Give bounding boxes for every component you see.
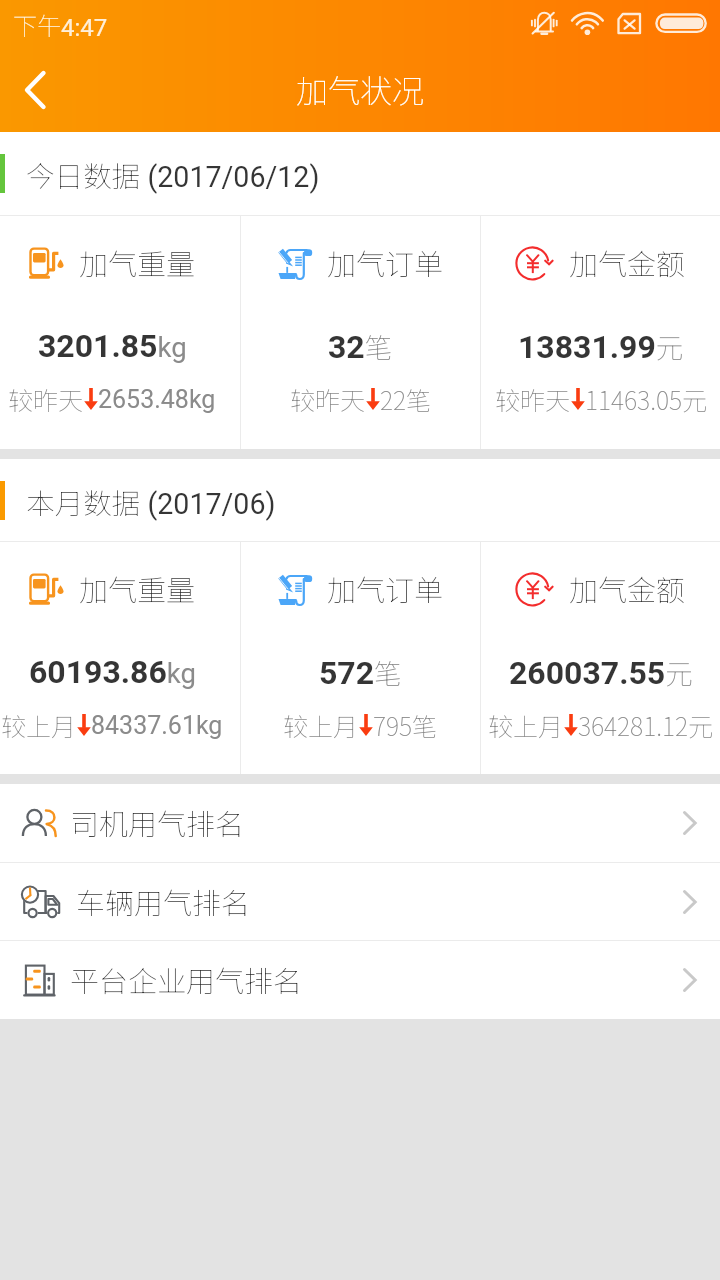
- staticText: 加气订单: [327, 567, 444, 609]
- staticText: 2653.48kg: [98, 385, 216, 414]
- staticText: 较昨天: [495, 381, 571, 417]
- staticText: 60193.86kg: [29, 653, 196, 691]
- staticText: 4:47: [61, 14, 108, 42]
- button[interactable]: 返回: [0, 50, 80, 132]
- staticText: 平台企业用气排名: [70, 958, 303, 1000]
- staticText: 较上月: [488, 707, 564, 743]
- staticText: 加气状况: [296, 66, 425, 112]
- staticText: 今日数据 (2017/06/12): [26, 154, 320, 195]
- staticText: 32笔: [328, 326, 393, 366]
- staticText: 下午: [13, 7, 61, 42]
- staticText: 车辆用气排名: [76, 880, 251, 922]
- staticText: 22笔: [380, 381, 432, 417]
- staticText: 3201.85kg: [38, 327, 187, 365]
- button[interactable]: 平台企业用气排名: [0, 941, 720, 1019]
- staticText: 364281.12元: [578, 707, 713, 743]
- staticText: 司机用气排名: [70, 801, 245, 843]
- staticText: 较昨天: [8, 381, 84, 417]
- staticText: 572笔: [319, 652, 402, 692]
- staticText: 较上月: [1, 707, 77, 743]
- staticText: 较昨天: [290, 381, 366, 417]
- staticText: 84337.61kg: [91, 711, 223, 740]
- button[interactable]: 车辆用气排名: [0, 863, 720, 940]
- staticText: 260037.55元: [509, 652, 693, 692]
- staticText: 加气重量: [79, 241, 196, 283]
- staticText: 本月数据 (2017/06): [26, 481, 276, 522]
- staticText: 加气金额: [569, 241, 686, 283]
- staticText: 加气订单: [327, 241, 444, 283]
- staticText: 加气金额: [569, 567, 686, 609]
- button[interactable]: 司机用气排名: [0, 784, 720, 862]
- staticText: 加气重量: [79, 567, 196, 609]
- staticText: 较上月: [283, 707, 359, 743]
- staticText: 11463.05元: [585, 381, 707, 417]
- staticText: 795笔: [373, 707, 438, 743]
- staticText: 13831.99元: [518, 326, 684, 366]
